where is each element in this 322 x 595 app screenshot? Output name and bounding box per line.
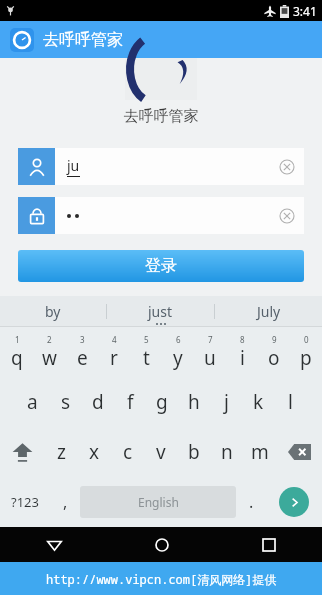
staticText: 2 <box>47 334 52 345</box>
button[interactable]: j <box>210 377 242 427</box>
button[interactable]: 1 <box>0 327 33 377</box>
button[interactable]: a <box>16 377 49 427</box>
staticText: j <box>224 389 229 415</box>
staticText: 登录 <box>145 256 177 276</box>
staticText: ?123 <box>11 493 39 511</box>
button[interactable]: g <box>146 377 178 427</box>
button[interactable]: Delete <box>276 427 322 477</box>
staticText: o <box>268 345 280 371</box>
button[interactable]: b <box>177 427 210 477</box>
staticText: h <box>188 389 200 415</box>
staticText: 6 <box>176 334 181 345</box>
staticText: 5 <box>144 334 149 345</box>
staticText: c <box>123 439 133 465</box>
button[interactable]: Home <box>108 527 215 562</box>
staticText: 7 <box>208 334 213 345</box>
button[interactable]: 5 <box>130 327 162 377</box>
button[interactable]: v <box>144 427 177 477</box>
staticText: w <box>42 345 57 371</box>
staticText: July <box>257 302 281 321</box>
staticText: 去呼呼管家 <box>43 30 123 50</box>
button[interactable]: 9 <box>258 327 290 377</box>
button[interactable]: App logo <box>10 28 34 52</box>
staticText: , <box>63 491 68 513</box>
staticText: u <box>204 345 216 371</box>
button[interactable]: Clear text <box>279 159 295 175</box>
button[interactable]: 6 <box>162 327 194 377</box>
button[interactable]: July <box>215 296 322 327</box>
button[interactable]: z <box>45 427 78 477</box>
staticText: t <box>143 345 150 371</box>
button[interactable]: m <box>243 427 276 477</box>
staticText: 去呼呼管家 <box>0 107 322 126</box>
button[interactable]: Clear text <box>279 208 295 224</box>
staticText: b <box>188 439 200 465</box>
staticText: p <box>300 345 312 371</box>
button[interactable]: 4 <box>98 327 130 377</box>
button[interactable]: English <box>80 486 236 518</box>
button[interactable]: ?123 <box>0 477 50 527</box>
button[interactable]: f <box>114 377 146 427</box>
button[interactable]: by <box>0 296 106 327</box>
button[interactable]: Back <box>0 527 108 562</box>
staticText: f <box>127 389 134 415</box>
button[interactable]: . <box>236 477 266 527</box>
button[interactable]: 8 <box>226 327 258 377</box>
staticText: z <box>57 439 66 465</box>
staticText: 3 <box>80 334 85 345</box>
staticText: x <box>89 439 100 465</box>
button[interactable]: s <box>49 377 82 427</box>
button[interactable]: ju <box>18 148 304 185</box>
button[interactable]: 登录 <box>18 250 304 282</box>
staticText: 4 <box>112 334 117 345</box>
button[interactable]: 2 <box>33 327 66 377</box>
staticText: r <box>110 345 118 371</box>
staticText: 1 <box>15 334 20 345</box>
staticText: a <box>27 389 38 415</box>
staticText: y <box>173 345 183 371</box>
staticText: . <box>249 491 254 513</box>
staticText: http://www.vipcn.com[清风网络]提供 <box>46 571 277 587</box>
staticText: q <box>11 345 23 371</box>
button[interactable]: c <box>111 427 144 477</box>
button[interactable]: d <box>82 377 114 427</box>
staticText: i <box>240 345 245 371</box>
staticText: g <box>156 389 168 415</box>
button[interactable]: , <box>50 477 80 527</box>
button[interactable]: Clear text <box>18 197 304 234</box>
button[interactable]: x <box>78 427 111 477</box>
staticText: by <box>45 302 61 321</box>
staticText: ju <box>67 156 80 175</box>
staticText: just <box>148 302 173 321</box>
button[interactable]: 7 <box>194 327 226 377</box>
staticText: n <box>221 439 233 465</box>
staticText: 8 <box>240 334 245 345</box>
button[interactable]: just <box>107 296 214 327</box>
button[interactable]: 3 <box>66 327 98 377</box>
staticText: d <box>92 389 104 415</box>
staticText: e <box>77 345 88 371</box>
staticText: l <box>288 389 293 415</box>
button[interactable]: k <box>242 377 274 427</box>
button[interactable]: l <box>274 377 306 427</box>
staticText: k <box>253 389 264 415</box>
staticText: v <box>156 439 166 465</box>
button[interactable]: n <box>210 427 243 477</box>
staticText: m <box>251 439 269 465</box>
staticText: 9 <box>272 334 277 345</box>
button[interactable]: Enter <box>279 487 309 517</box>
staticText: 0 <box>304 334 309 345</box>
button[interactable]: h <box>178 377 210 427</box>
staticText: s <box>61 389 71 415</box>
button[interactable]: 0 <box>290 327 322 377</box>
staticText: 3:41 <box>293 3 317 19</box>
staticText: English <box>138 494 179 510</box>
button[interactable]: Recent apps <box>215 527 322 562</box>
button[interactable]: Shift <box>0 427 45 477</box>
